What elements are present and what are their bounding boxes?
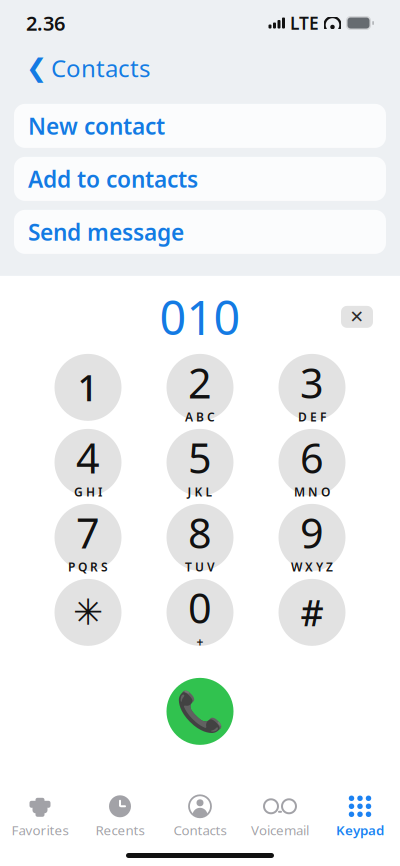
button[interactable]: Favorites (0, 795, 80, 839)
staticText: New contact (28, 111, 165, 141)
button[interactable]: 8 (166, 504, 233, 571)
staticText: Favorites (11, 821, 68, 839)
button[interactable]: 4 (54, 429, 121, 496)
staticText: 1 (77, 363, 98, 411)
staticText: 9 (300, 505, 324, 560)
button[interactable]: 1 (54, 354, 121, 421)
staticText: A B C (185, 409, 215, 425)
button[interactable]: Send message (14, 210, 386, 254)
staticText: 010 (159, 286, 240, 348)
staticText: J K L (187, 484, 212, 500)
button[interactable]: Call (166, 678, 233, 745)
button[interactable]: New contact (14, 104, 386, 148)
staticText: G H I (74, 484, 102, 500)
staticText: ✳ (73, 592, 103, 633)
button[interactable]: 0 (166, 579, 233, 646)
staticText: Send message (28, 217, 184, 247)
staticText: + (196, 634, 203, 650)
button[interactable]: 2 (166, 354, 233, 421)
button[interactable]: 9 (278, 504, 345, 571)
staticText: Voicemail (251, 821, 309, 839)
staticText: Contacts (51, 52, 150, 84)
staticText: P Q R S (68, 559, 108, 575)
staticText: 8 (188, 505, 212, 560)
button[interactable]: Add to contacts (14, 157, 386, 201)
staticText: 2 (188, 355, 212, 410)
staticText: Recents (95, 821, 144, 839)
button[interactable]: Recents (80, 795, 160, 839)
button[interactable]: Keypad (320, 795, 400, 839)
staticText: Contacts (173, 821, 226, 839)
staticText: Keypad (336, 821, 384, 839)
staticText: 5 (188, 430, 212, 485)
button[interactable]: Delete (336, 301, 378, 333)
staticText: T U V (185, 559, 215, 575)
staticText: ✕ (349, 307, 364, 327)
button[interactable]: Voicemail (240, 795, 320, 839)
staticText: 0 (188, 580, 212, 635)
button[interactable]: Contacts (160, 795, 240, 839)
staticText: D E F (298, 409, 326, 425)
staticText: ❮ (26, 54, 47, 82)
staticText: 2.36 (26, 10, 65, 36)
staticText: 📞 (176, 689, 224, 733)
button[interactable]: ❮ (26, 48, 150, 88)
button[interactable]: 6 (278, 429, 345, 496)
staticText: 4 (76, 430, 100, 485)
button[interactable]: 7 (54, 504, 121, 571)
staticText: M N O (294, 484, 330, 500)
staticText: W X Y Z (291, 559, 333, 575)
staticText: LTE (290, 11, 319, 34)
staticText: 6 (300, 430, 324, 485)
staticText: # (300, 588, 323, 636)
staticText: Add to contacts (28, 164, 198, 194)
staticText: 7 (76, 505, 100, 560)
button[interactable]: 3 (278, 354, 345, 421)
button[interactable]: # (278, 579, 345, 646)
button[interactable]: ✳ (54, 579, 121, 646)
button[interactable]: 5 (166, 429, 233, 496)
staticText: 3 (300, 355, 324, 410)
